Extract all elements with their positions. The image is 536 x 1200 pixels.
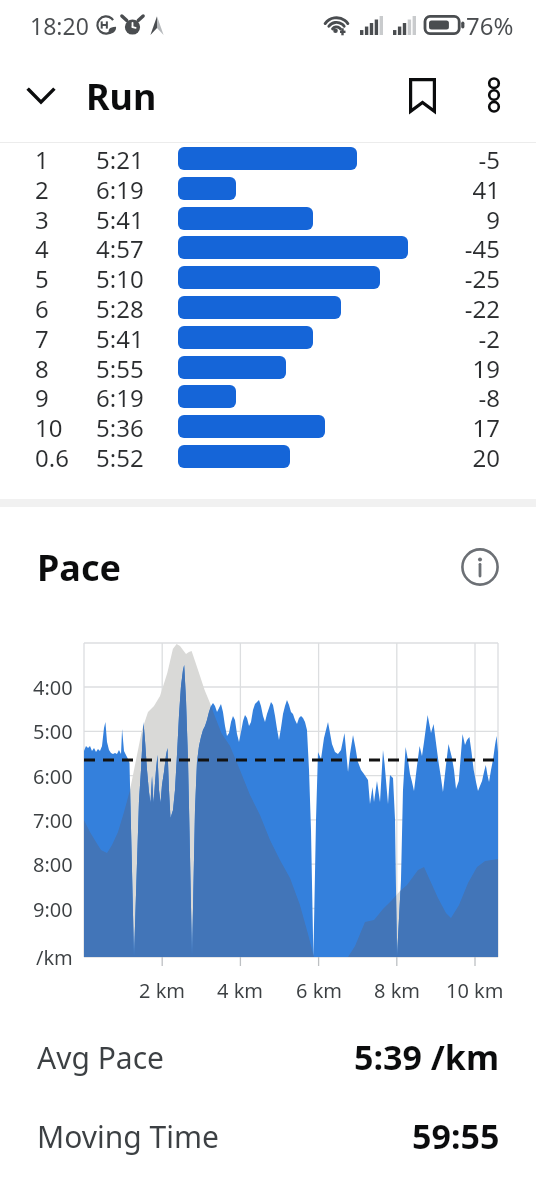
staticText: -22: [464, 292, 500, 322]
button[interactable]: 1: [0, 143, 536, 173]
staticText: 9:00: [33, 896, 73, 923]
staticText: 9: [35, 381, 49, 411]
staticText: 1: [35, 143, 49, 173]
staticText: 6:00: [33, 763, 73, 790]
staticText: 8:00: [33, 851, 73, 878]
button[interactable]: More options: [470, 71, 518, 119]
staticText: 20: [472, 441, 500, 471]
staticText: 4:57: [96, 232, 144, 262]
staticText: -45: [464, 232, 500, 262]
staticText: 3: [35, 203, 49, 233]
button[interactable]: 4: [0, 232, 536, 262]
staticText: 17: [472, 411, 500, 441]
staticText: 6:19: [96, 173, 144, 203]
staticText: 7: [35, 322, 49, 352]
button[interactable]: Bookmark: [398, 71, 446, 119]
staticText: 76%: [466, 9, 514, 42]
staticText: 2: [35, 173, 49, 203]
staticText: -25: [464, 262, 500, 292]
staticText: 7:00: [33, 807, 73, 834]
staticText: 5:00: [33, 718, 73, 745]
staticText: 2 km: [139, 977, 186, 1004]
button[interactable]: Moving Time: [0, 1097, 536, 1175]
staticText: -2: [478, 322, 500, 352]
button[interactable]: 6: [0, 292, 536, 322]
staticText: 4: [35, 232, 49, 262]
staticText: 5:36: [96, 411, 144, 441]
button[interactable]: 5: [0, 262, 536, 292]
button[interactable]: 3: [0, 203, 536, 233]
staticText: 5:55: [96, 352, 144, 382]
staticText: 5:28: [96, 292, 144, 322]
staticText: 18:20: [30, 10, 89, 41]
button[interactable]: 0.6: [0, 441, 536, 471]
staticText: /km: [36, 944, 73, 971]
button[interactable]: Collapse: [17, 72, 65, 120]
staticText: 8 km: [374, 977, 421, 1004]
staticText: Avg Pace: [37, 1037, 164, 1078]
staticText: Moving Time: [37, 1116, 219, 1157]
staticText: -5: [478, 143, 500, 173]
staticText: 10: [35, 411, 63, 441]
staticText: 5:41: [96, 322, 144, 352]
staticText: 4 km: [217, 977, 264, 1004]
button[interactable]: 7: [0, 322, 536, 352]
staticText: -8: [478, 381, 500, 411]
staticText: 5:41: [96, 203, 144, 233]
staticText: 5:21: [96, 143, 144, 173]
staticText: 5:39 /km: [354, 1034, 500, 1080]
staticText: 19: [472, 352, 500, 382]
staticText: 8: [35, 352, 49, 382]
staticText: 4:00: [33, 674, 73, 701]
staticText: 0.6: [35, 441, 69, 471]
button[interactable]: 10: [0, 411, 536, 441]
staticText: Pace: [37, 543, 121, 591]
staticText: 9: [486, 203, 500, 233]
staticText: 6: [35, 292, 49, 322]
staticText: 5: [35, 262, 49, 292]
staticText: 6 km: [296, 977, 343, 1004]
staticText: 59:55: [412, 1113, 500, 1159]
staticText: 5:52: [96, 441, 144, 471]
staticText: 5:10: [96, 262, 144, 292]
button[interactable]: 8: [0, 352, 536, 382]
staticText: Run: [86, 72, 157, 120]
button[interactable]: 2: [0, 173, 536, 203]
staticText: 6:19: [96, 381, 144, 411]
button[interactable]: Avg Pace: [0, 1018, 536, 1096]
button[interactable]: 9: [0, 381, 536, 411]
staticText: 10 km: [446, 977, 504, 1004]
staticText: 41: [472, 173, 500, 203]
button[interactable]: Info: [456, 543, 504, 591]
